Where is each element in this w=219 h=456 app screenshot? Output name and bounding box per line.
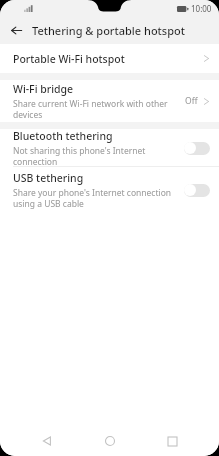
staticText: Share your phone's Internet connection u… bbox=[13, 187, 178, 209]
button[interactable]: Toggle bbox=[184, 141, 210, 155]
button[interactable]: Portable Wi-Fi hotspot bbox=[0, 44, 219, 73]
button[interactable]: USB tethering bbox=[0, 167, 219, 212]
button[interactable]: Recent apps bbox=[157, 426, 187, 456]
staticText: USB tethering bbox=[13, 171, 84, 185]
staticText: Off bbox=[185, 95, 198, 107]
button[interactable]: Home bbox=[95, 426, 125, 456]
button[interactable]: Wi-Fi bridge bbox=[0, 80, 219, 122]
staticText: Tethering & portable hotspot bbox=[32, 23, 185, 38]
staticText: Wi-Fi bridge bbox=[13, 82, 74, 96]
button[interactable]: Back bbox=[32, 426, 62, 456]
button[interactable]: Toggle bbox=[184, 183, 210, 197]
staticText: Bluetooth tethering bbox=[13, 129, 113, 143]
staticText: Not sharing this phone's Internet connec… bbox=[13, 145, 178, 166]
staticText: 10:00 bbox=[191, 3, 212, 14]
button[interactable]: Back bbox=[8, 22, 25, 39]
button[interactable]: Bluetooth tethering bbox=[0, 129, 219, 166]
staticText: Share current Wi-Fi network with other d… bbox=[13, 98, 179, 120]
staticText: Portable Wi-Fi hotspot bbox=[13, 52, 125, 66]
